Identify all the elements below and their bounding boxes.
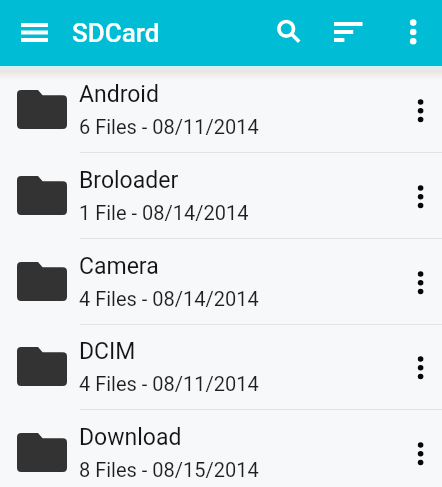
button[interactable]: More options xyxy=(400,259,442,305)
staticText: 1 File - 08/14/2014 xyxy=(79,201,249,224)
staticText: 6 Files - 08/11/2014 xyxy=(79,115,259,138)
staticText: 8 Files - 08/15/2014 xyxy=(79,458,259,481)
button[interactable]: Android xyxy=(0,66,442,152)
button[interactable]: More options xyxy=(400,344,442,390)
button[interactable]: More options xyxy=(390,9,436,57)
button[interactable]: Broloader xyxy=(0,152,442,238)
staticText: Download xyxy=(79,424,182,451)
staticText: Android xyxy=(79,81,159,108)
staticText: 4 Files - 08/11/2014 xyxy=(79,372,259,395)
button[interactable]: Download xyxy=(0,409,442,487)
button[interactable]: Search xyxy=(263,5,311,53)
staticText: SDCard xyxy=(72,18,160,48)
button[interactable]: Sort xyxy=(322,9,374,57)
button[interactable]: DCIM xyxy=(0,323,442,409)
staticText: Camera xyxy=(79,253,159,280)
button[interactable]: More options xyxy=(400,173,442,219)
button[interactable]: More options xyxy=(400,87,442,133)
button[interactable]: More options xyxy=(400,430,442,476)
staticText: Broloader xyxy=(79,167,179,194)
button[interactable]: Camera xyxy=(0,238,442,324)
button[interactable]: Open navigation drawer xyxy=(5,9,63,57)
staticText: 4 Files - 08/14/2014 xyxy=(79,287,259,310)
staticText: DCIM xyxy=(79,338,136,365)
